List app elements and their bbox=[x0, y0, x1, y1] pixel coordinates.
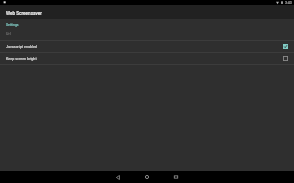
button[interactable]: Recents bbox=[162, 171, 190, 183]
button[interactable]: Home bbox=[133, 171, 161, 183]
button[interactable]: Back bbox=[104, 171, 132, 183]
button[interactable]: Javascript enabled bbox=[0, 41, 294, 52]
staticText: 3:43 bbox=[285, 1, 292, 5]
button[interactable]: Keep screen bright bbox=[0, 53, 294, 64]
staticText: Url bbox=[6, 32, 11, 36]
staticText: Web Screensaver bbox=[6, 11, 42, 16]
staticText: Keep screen bright bbox=[6, 57, 283, 61]
staticText: Settings bbox=[6, 23, 19, 27]
staticText: Javascript enabled bbox=[6, 45, 283, 49]
